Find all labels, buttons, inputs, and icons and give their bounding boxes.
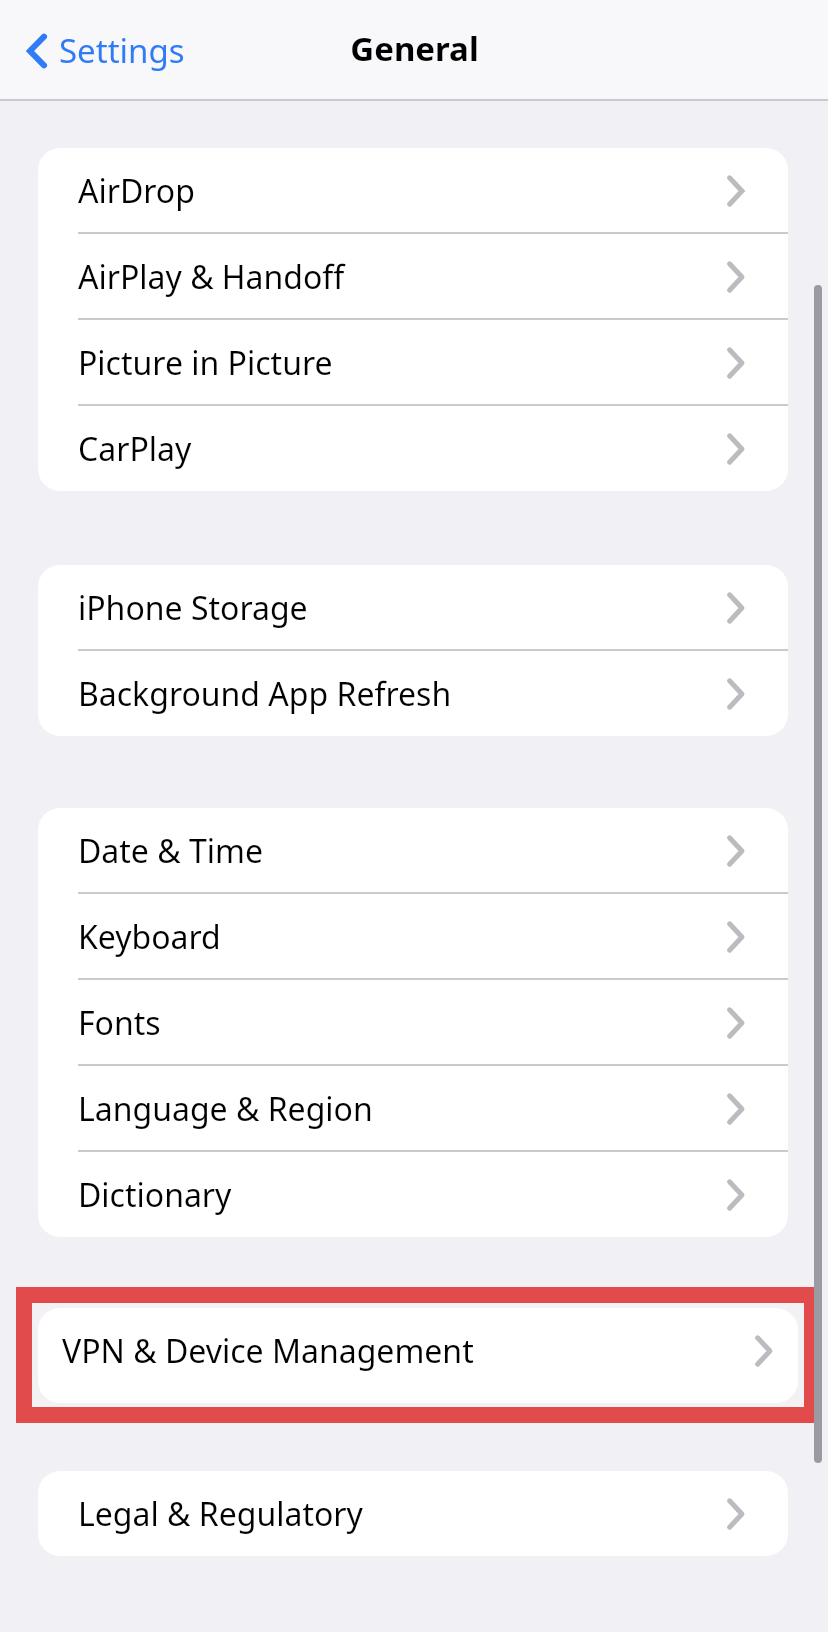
staticText: Background App Refresh bbox=[78, 672, 452, 716]
button[interactable]: CarPlay bbox=[38, 406, 788, 491]
button[interactable]: VPN & Device Management bbox=[38, 1308, 798, 1393]
button[interactable]: Language & Region bbox=[38, 1066, 788, 1151]
staticText: General bbox=[350, 26, 479, 71]
other: Open iPhone Storage bbox=[727, 593, 744, 623]
other: Open Background App Refresh bbox=[727, 679, 744, 709]
button[interactable]: Dictionary bbox=[38, 1152, 788, 1237]
staticText: VPN & Device Management bbox=[62, 1329, 474, 1373]
other: Open Legal & Regulatory bbox=[727, 1499, 744, 1529]
other: Open AirPlay & Handoff bbox=[727, 262, 744, 292]
staticText: CarPlay bbox=[78, 427, 192, 471]
button[interactable]: Keyboard bbox=[38, 894, 788, 979]
other: Open AirDrop bbox=[727, 176, 744, 206]
staticText: Dictionary bbox=[78, 1173, 232, 1217]
button[interactable]: iPhone Storage bbox=[38, 565, 788, 650]
button[interactable]: Settings bbox=[20, 20, 195, 81]
button[interactable]: Legal & Regulatory bbox=[38, 1471, 788, 1556]
staticText: Legal & Regulatory bbox=[78, 1492, 363, 1536]
staticText: Language & Region bbox=[78, 1087, 373, 1131]
staticText: Fonts bbox=[78, 1001, 161, 1045]
button[interactable]: AirDrop bbox=[38, 148, 788, 233]
other: Open Date & Time bbox=[727, 836, 744, 866]
staticText: Picture in Picture bbox=[78, 341, 333, 385]
button[interactable]: Background App Refresh bbox=[38, 651, 788, 736]
other: Open Dictionary bbox=[727, 1180, 744, 1210]
staticText: iPhone Storage bbox=[78, 586, 308, 630]
button[interactable]: Fonts bbox=[38, 980, 788, 1065]
other: Open Fonts bbox=[727, 1008, 744, 1038]
other: Open Picture in Picture bbox=[727, 348, 744, 378]
button[interactable]: Date & Time bbox=[38, 808, 788, 893]
staticText: Settings bbox=[59, 28, 185, 73]
other: Open CarPlay bbox=[727, 434, 744, 464]
staticText: Keyboard bbox=[78, 915, 221, 959]
button[interactable]: Picture in Picture bbox=[38, 320, 788, 405]
button[interactable]: AirPlay & Handoff bbox=[38, 234, 788, 319]
other: Open VPN & Device Management bbox=[755, 1336, 772, 1366]
other: Open Keyboard bbox=[727, 922, 744, 952]
staticText: AirPlay & Handoff bbox=[78, 255, 345, 299]
staticText: Date & Time bbox=[78, 829, 263, 873]
staticText: AirDrop bbox=[78, 169, 195, 213]
other: Open Language & Region bbox=[727, 1094, 744, 1124]
